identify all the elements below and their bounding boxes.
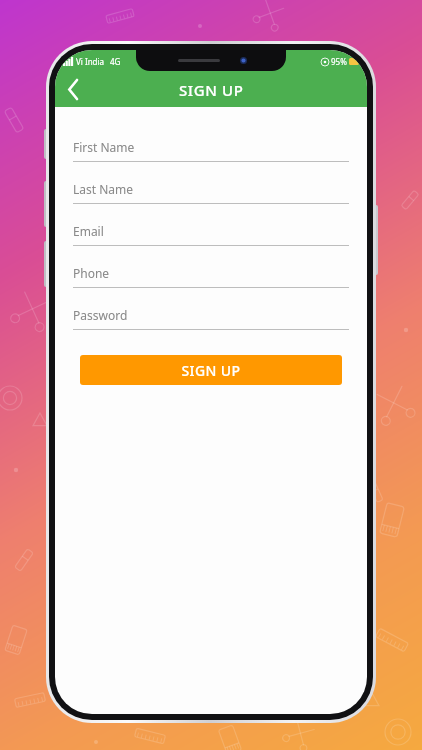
button[interactable]: Phone — [73, 259, 349, 301]
staticText: SIGN UP — [181, 361, 241, 380]
staticText: Last Name — [73, 181, 134, 197]
staticText: First Name — [73, 139, 135, 155]
staticText: Vi India — [76, 56, 105, 67]
staticText: 95% — [331, 56, 347, 67]
button[interactable]: Password — [73, 301, 349, 343]
button[interactable]: Last Name — [73, 175, 349, 217]
button[interactable]: Back — [55, 72, 91, 107]
staticText: Password — [73, 307, 128, 323]
staticText: Phone — [73, 265, 110, 281]
button[interactable]: First Name — [73, 133, 349, 175]
staticText: SIGN UP — [179, 80, 244, 100]
staticText: Email — [73, 223, 104, 239]
button[interactable]: Email — [73, 217, 349, 259]
staticText: 4G — [110, 56, 121, 67]
button[interactable]: SIGN UP — [80, 355, 342, 385]
